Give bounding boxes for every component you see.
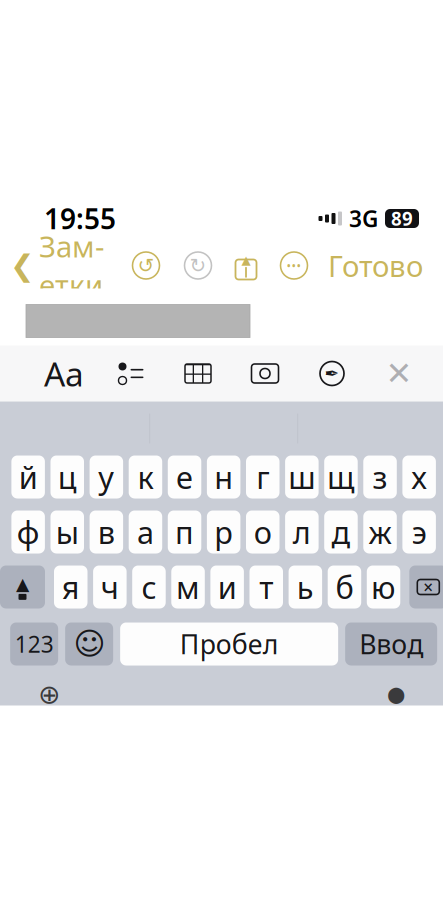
button[interactable]: Redo xyxy=(178,245,218,285)
staticText: × xyxy=(423,575,433,598)
button[interactable]: Share xyxy=(231,250,261,280)
staticText: ю xyxy=(371,567,396,607)
staticText: й xyxy=(19,457,38,497)
staticText: 89 xyxy=(391,206,413,231)
staticText: д xyxy=(331,512,350,552)
button[interactable]: р xyxy=(207,510,240,553)
staticText: с xyxy=(141,567,156,607)
staticText: 3G xyxy=(349,203,378,233)
staticText: ••• xyxy=(286,257,301,273)
button[interactable]: й xyxy=(11,455,45,498)
button[interactable]: о xyxy=(246,510,279,553)
button[interactable]: м xyxy=(171,565,205,608)
staticText: Ввод xyxy=(359,626,423,662)
button[interactable]: ф xyxy=(11,510,45,553)
button[interactable]: д xyxy=(324,510,358,553)
button[interactable]: More xyxy=(274,245,314,285)
staticText: ж xyxy=(369,512,392,552)
button[interactable]: Backspace xyxy=(409,565,443,608)
staticText: ы xyxy=(56,512,79,552)
button[interactable]: Ввод xyxy=(345,622,437,665)
button[interactable]: г xyxy=(246,455,279,498)
staticText: ч xyxy=(101,567,119,607)
staticText: э xyxy=(412,512,427,552)
staticText: ь xyxy=(297,567,314,607)
button[interactable]: е xyxy=(168,455,201,498)
button[interactable]: у xyxy=(90,455,123,498)
staticText: ▲ xyxy=(16,574,29,594)
button[interactable]: Table xyxy=(176,351,220,395)
button[interactable]: ш xyxy=(285,455,319,498)
staticText: з xyxy=(373,457,388,497)
staticText: ↺ xyxy=(137,254,154,277)
button[interactable]: к xyxy=(129,455,162,498)
button[interactable]: н xyxy=(207,455,240,498)
staticText: ф xyxy=(17,512,40,552)
button[interactable]: с xyxy=(132,565,166,608)
staticText: Заметки xyxy=(39,226,104,304)
staticText: Пробел xyxy=(180,626,279,662)
button[interactable]: ы xyxy=(50,510,84,553)
button[interactable]: б xyxy=(328,565,361,608)
button[interactable]: 123 xyxy=(10,622,58,665)
staticText: л xyxy=(293,512,311,552)
staticText: п xyxy=(175,512,194,552)
button[interactable]: Undo xyxy=(126,245,166,285)
staticText: щ xyxy=(327,457,355,497)
staticText: ш xyxy=(288,457,315,497)
staticText: ☺ xyxy=(73,627,105,661)
button[interactable]: щ xyxy=(324,455,358,498)
button[interactable]: ь xyxy=(289,565,322,608)
staticText: к xyxy=(137,457,153,497)
staticText: Aa xyxy=(44,351,84,396)
button[interactable]: т xyxy=(249,565,283,608)
staticText: ⬤ xyxy=(387,685,405,704)
staticText: р xyxy=(214,512,233,552)
staticText: Готово xyxy=(328,246,423,285)
button[interactable]: э xyxy=(402,510,436,553)
staticText: н xyxy=(214,457,233,497)
staticText: в xyxy=(98,512,115,552)
button[interactable]: и xyxy=(210,565,244,608)
button[interactable]: ж xyxy=(363,510,397,553)
button[interactable]: Markup xyxy=(310,351,354,395)
staticText: 123 xyxy=(15,629,54,659)
staticText: ц xyxy=(58,457,77,497)
staticText: м xyxy=(176,567,200,607)
staticText: е xyxy=(176,457,193,497)
button[interactable]: Пробел xyxy=(120,622,338,665)
staticText: ✕ xyxy=(385,355,412,392)
button[interactable]: а xyxy=(129,510,162,553)
staticText: х xyxy=(411,457,427,497)
button[interactable]: л xyxy=(285,510,319,553)
button[interactable]: ц xyxy=(50,455,84,498)
button[interactable]: ю xyxy=(367,565,400,608)
button[interactable]: Готово xyxy=(320,243,431,287)
staticText: я xyxy=(62,567,80,607)
button[interactable]: в xyxy=(90,510,123,553)
staticText: и xyxy=(218,567,237,607)
staticText: 19:55 xyxy=(44,200,116,237)
button[interactable]: Text format xyxy=(42,351,86,395)
button[interactable]: ❮ xyxy=(0,243,110,287)
staticText: ✒ xyxy=(324,364,339,383)
staticText: т xyxy=(259,567,273,607)
button[interactable]: ч xyxy=(93,565,127,608)
staticText: ⊕ xyxy=(38,679,60,710)
button[interactable]: х xyxy=(402,455,436,498)
staticText: ↻ xyxy=(189,254,206,277)
button[interactable]: Shift xyxy=(0,565,45,608)
staticText: а xyxy=(137,512,154,552)
button[interactable]: Checklist xyxy=(109,351,153,395)
staticText: ❮ xyxy=(10,249,35,282)
button[interactable]: Camera xyxy=(243,351,287,395)
button[interactable]: я xyxy=(54,565,87,608)
button[interactable]: п xyxy=(168,510,201,553)
button[interactable]: Close keyboard xyxy=(377,351,421,395)
button[interactable]: Emoji xyxy=(65,622,113,665)
button[interactable]: з xyxy=(363,455,397,498)
staticText: о xyxy=(254,512,272,552)
staticText: у xyxy=(98,457,114,497)
staticText: г xyxy=(256,457,269,497)
staticText: ▲ xyxy=(241,253,250,267)
